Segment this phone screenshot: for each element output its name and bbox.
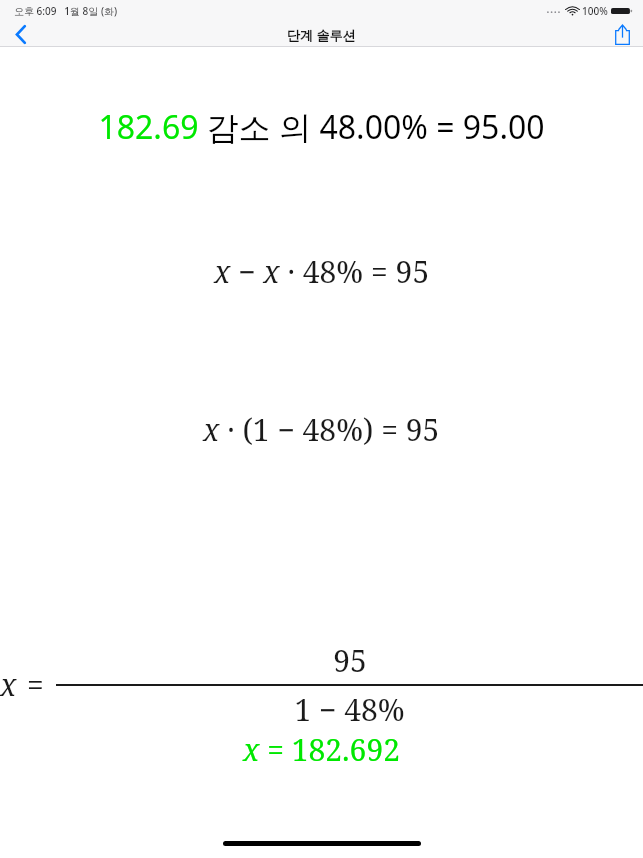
staticText: x (0, 664, 17, 705)
staticText: = (27, 664, 44, 705)
button[interactable]: Back (0, 22, 42, 47)
staticText: 오후 6:09 1월 8일 (화) (14, 4, 118, 18)
button[interactable]: Share (601, 22, 643, 47)
staticText: x · (1 − 48%) = 95 (203, 409, 440, 450)
staticText: 95 (333, 640, 367, 681)
staticText: 100% (582, 4, 608, 18)
staticText: 단계 솔루션 (287, 26, 356, 44)
staticText: x = 182.692 (243, 729, 400, 770)
staticText: 182.69 감소 의 48.00% = 95.00 (98, 105, 545, 149)
staticText: x − x · 48% = 95 (214, 251, 430, 292)
staticText: 1 − 48% (294, 689, 405, 730)
